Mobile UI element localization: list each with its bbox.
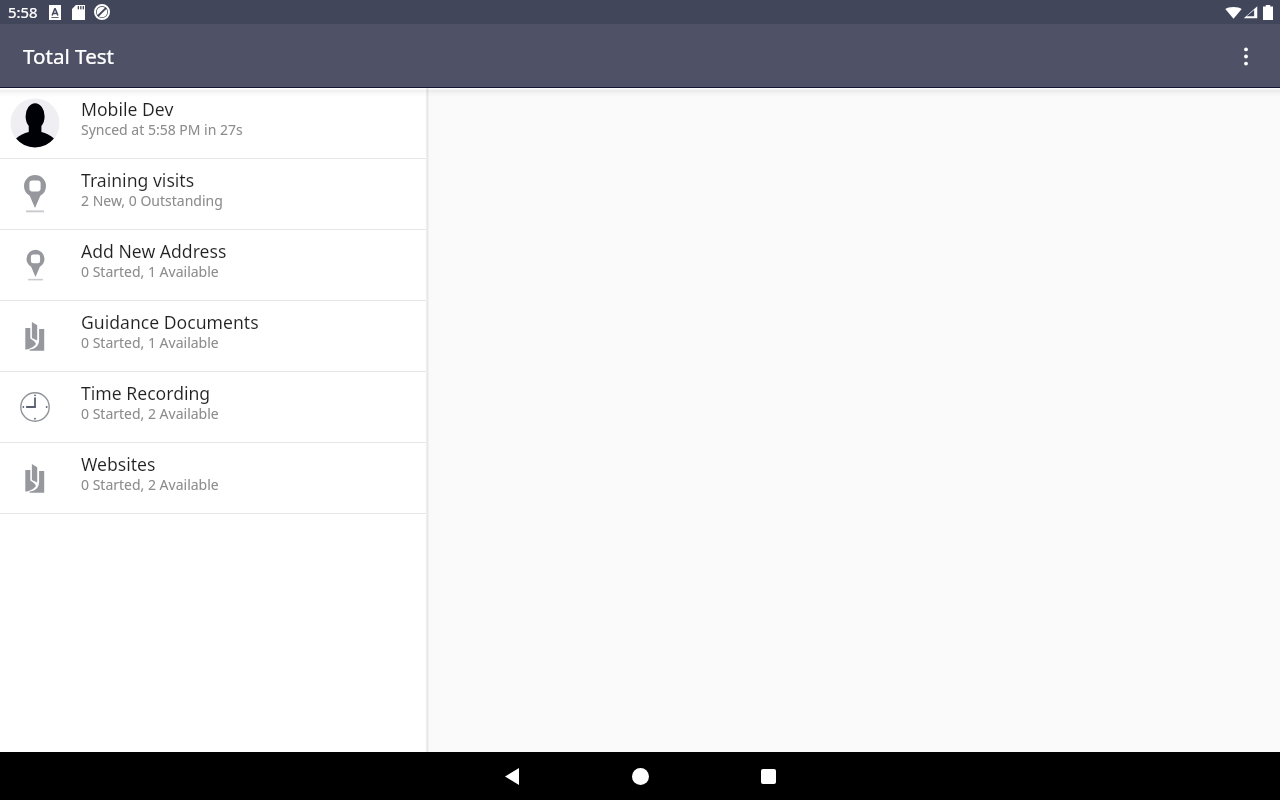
staticText: 0 Started, 1 Available [81,333,219,352]
button[interactable]: Websites [0,443,426,514]
button[interactable]: Guidance Documents [0,301,426,372]
button[interactable]: Add New Address [0,230,426,301]
staticText: 2 New, 0 Outstanding [81,191,223,210]
staticText: Mobile Dev [81,97,174,121]
staticText: Training visits [81,168,195,192]
staticText: Synced at 5:58 PM in 27s [81,120,243,139]
staticText: Total Test [23,42,115,70]
button[interactable]: More options [1224,34,1268,78]
button[interactable]: Back [484,752,540,800]
button[interactable]: Mobile Dev [0,88,426,159]
staticText: Time Recording [81,381,211,405]
staticText: Add New Address [81,239,227,263]
staticText: Websites [81,452,156,476]
staticText: 5:58 [8,2,38,22]
button[interactable]: Home [612,752,668,800]
staticText: Guidance Documents [81,310,259,334]
staticText: 0 Started, 2 Available [81,404,219,423]
button[interactable]: Recent apps [740,752,796,800]
button[interactable]: Time Recording [0,372,426,443]
staticText: 0 Started, 2 Available [81,475,219,494]
staticText: 0 Started, 1 Available [81,262,219,281]
button[interactable]: Training visits [0,159,426,230]
